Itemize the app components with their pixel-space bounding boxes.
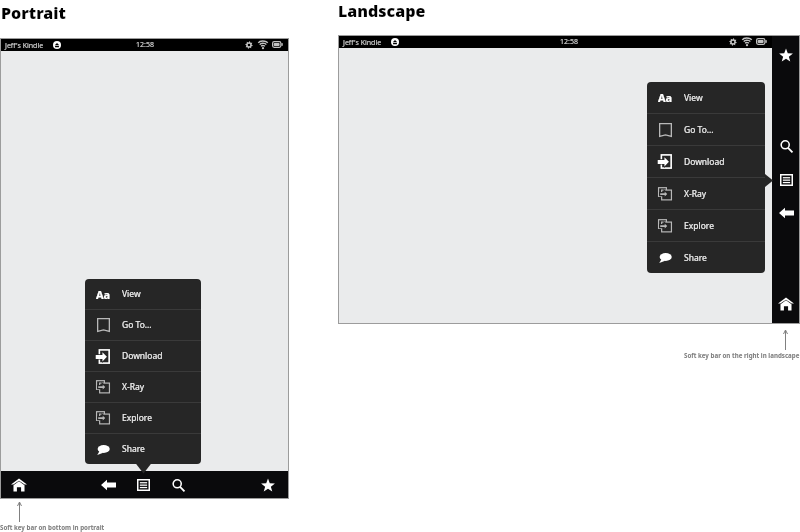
button[interactable]: Bookmarks <box>257 474 279 496</box>
staticText: X-Ray <box>684 188 707 200</box>
staticText: Soft key bar on the right in landscape <box>684 351 800 359</box>
button[interactable]: Share <box>85 434 201 464</box>
button[interactable]: Go To... <box>647 114 765 145</box>
button[interactable]: Menu <box>775 169 797 191</box>
staticText: Jeff's Kindle <box>343 38 382 48</box>
button[interactable]: Bookmarks <box>775 44 797 66</box>
button[interactable]: Share <box>647 242 765 273</box>
staticText: Aa <box>658 90 673 105</box>
staticText: Download <box>684 156 725 168</box>
staticText: View <box>122 288 141 300</box>
staticText: 12:58 <box>136 40 154 50</box>
staticText: X-Ray <box>122 381 145 393</box>
button[interactable]: Home <box>8 474 30 496</box>
staticText: Jeff's Kindle <box>5 41 44 51</box>
button[interactable]: Home <box>775 293 797 315</box>
button[interactable]: Go To... <box>85 310 201 340</box>
staticText: Portrait <box>1 2 66 24</box>
button[interactable]: Explore <box>85 403 201 433</box>
staticText: 12:58 <box>560 37 578 47</box>
button[interactable]: Aa <box>647 82 765 113</box>
button[interactable]: Back <box>97 474 119 496</box>
button[interactable]: Download <box>647 146 765 177</box>
staticText: Aa <box>96 287 111 302</box>
button[interactable]: X-Ray <box>647 178 765 209</box>
staticText: Go To... <box>122 319 152 331</box>
staticText: Landscape <box>338 0 426 22</box>
staticText: Share <box>122 443 145 455</box>
staticText: Share <box>684 252 707 264</box>
staticText: Go To... <box>684 124 714 136</box>
staticText: Explore <box>122 412 152 424</box>
button[interactable]: Menu <box>132 474 154 496</box>
button[interactable]: Aa <box>85 279 201 309</box>
button[interactable]: X-Ray <box>85 372 201 402</box>
staticText: Download <box>122 350 163 362</box>
staticText: Explore <box>684 220 714 232</box>
staticText: Soft key bar on bottom in portrait <box>0 523 105 531</box>
button[interactable]: Explore <box>647 210 765 241</box>
button[interactable]: Search <box>167 474 189 496</box>
button[interactable]: Back <box>775 202 797 224</box>
button[interactable]: Download <box>85 341 201 371</box>
button[interactable]: Search <box>775 135 797 157</box>
staticText: View <box>684 92 703 104</box>
